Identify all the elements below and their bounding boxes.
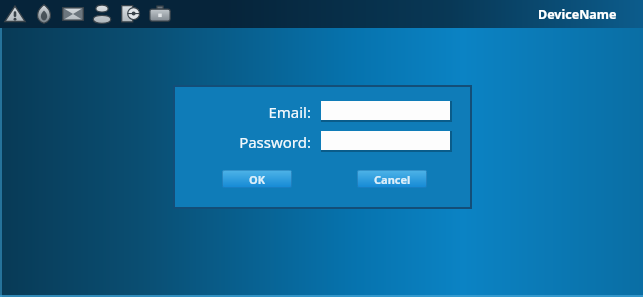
staticText: DeviceName (538, 6, 617, 23)
button[interactable]: Cancel (357, 170, 427, 188)
button[interactable]: Messages (58, 0, 87, 28)
staticText: OK (249, 172, 266, 187)
staticText: Email: (173, 102, 311, 122)
button[interactable]: Cases (145, 0, 174, 28)
button[interactable]: Contacts (87, 0, 116, 28)
button[interactable]: Alarms (29, 0, 58, 28)
staticText: Cancel (374, 172, 411, 187)
button[interactable]: OK (222, 170, 292, 188)
button[interactable]: Network (116, 0, 145, 28)
staticText: Password: (173, 132, 311, 152)
button[interactable]: Alerts (0, 0, 29, 28)
